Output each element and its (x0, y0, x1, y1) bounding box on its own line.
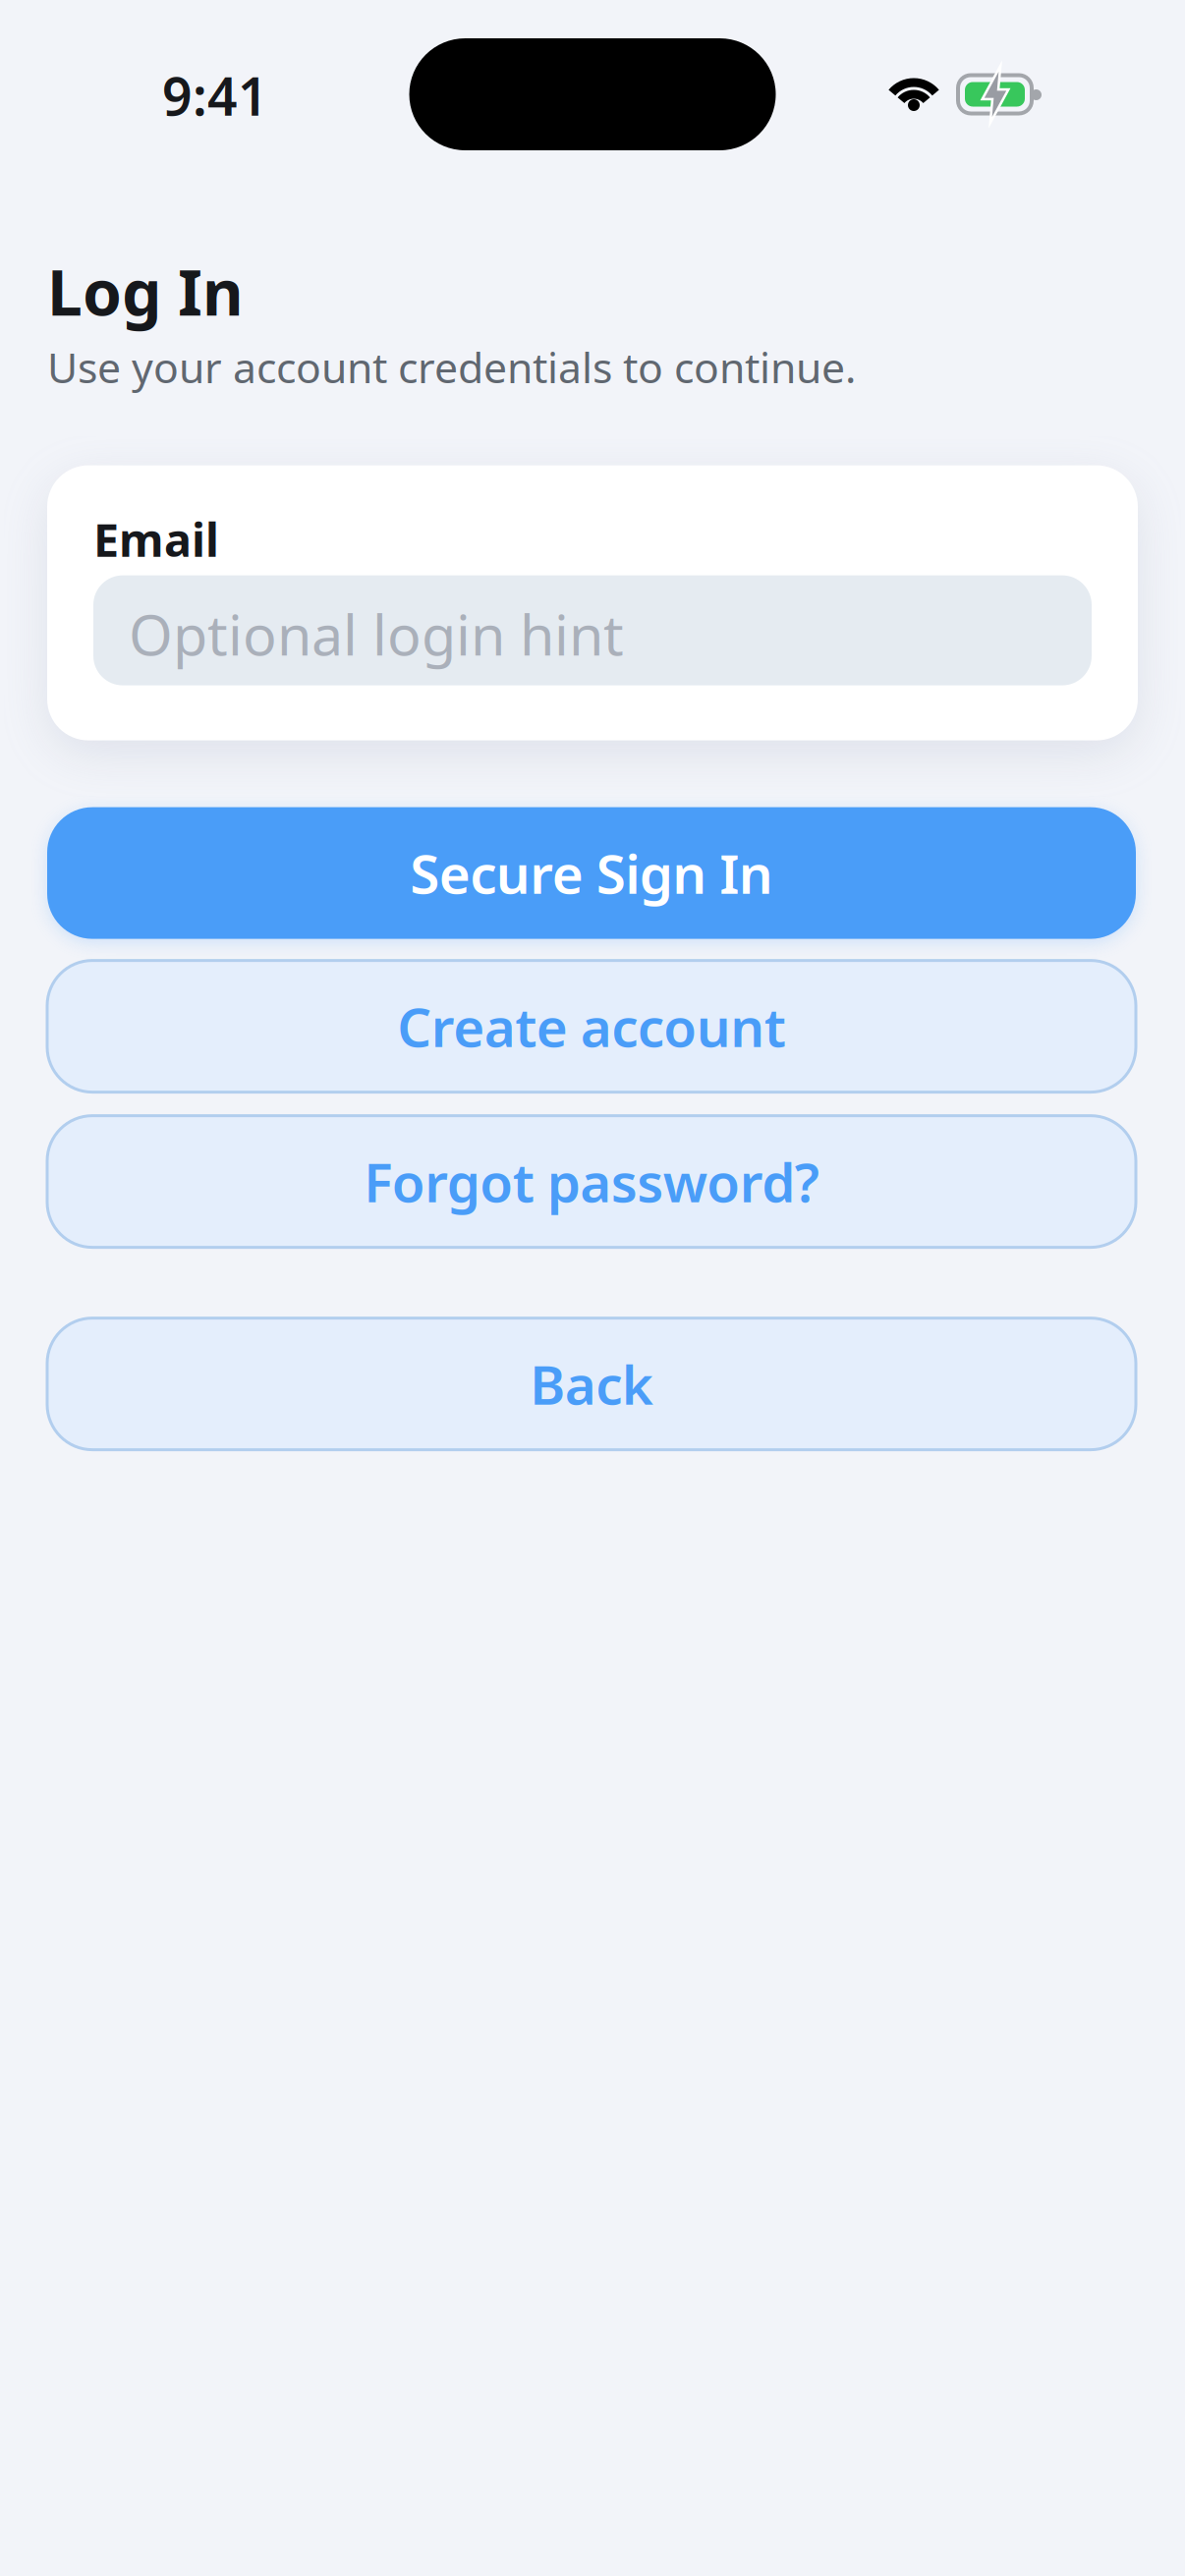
staticText: Use your account credentials to continue… (47, 339, 856, 395)
button[interactable]: Back (47, 1318, 1136, 1450)
button[interactable]: Email, text field (93, 575, 1092, 685)
staticText: Optional login hint (129, 596, 624, 671)
button[interactable]: Secure Sign In (47, 807, 1136, 939)
staticText: Create account (397, 991, 786, 1062)
staticText: Email (93, 509, 219, 569)
staticText: Back (530, 1348, 653, 1420)
staticText: 9:41 (162, 61, 268, 130)
button[interactable]: Forgot password? (47, 1116, 1136, 1247)
staticText: Secure Sign In (410, 837, 773, 909)
staticText: Forgot password? (364, 1146, 819, 1217)
staticText: Log In (47, 250, 244, 333)
button[interactable]: Create account (47, 960, 1136, 1092)
